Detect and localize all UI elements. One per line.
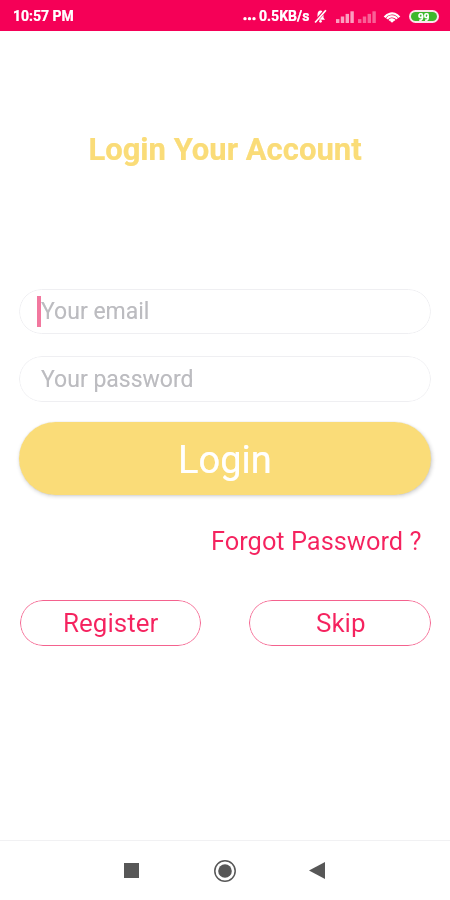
staticText: Your password (41, 366, 194, 393)
staticText: 10:57 PM (13, 8, 74, 24)
button[interactable]: Login (19, 422, 431, 495)
button[interactable]: Back (272, 841, 366, 900)
staticText: Forgot Password ? (211, 526, 422, 556)
button[interactable]: Register (20, 600, 201, 646)
staticText: Skip (316, 608, 366, 638)
button[interactable]: Recents (84, 841, 178, 900)
staticText: 99 (418, 12, 430, 21)
staticText: Your email (41, 298, 150, 325)
staticText: 0.5KB/s (259, 8, 310, 24)
staticText: Register (63, 608, 159, 638)
button[interactable]: Your password (19, 356, 431, 402)
button[interactable]: Home (178, 841, 272, 900)
button[interactable]: Skip (249, 600, 431, 646)
button[interactable]: Forgot Password ? (211, 526, 422, 556)
staticText: Login Your Account (88, 131, 362, 167)
button[interactable]: Your email (19, 289, 431, 334)
staticText: Login (178, 438, 272, 483)
